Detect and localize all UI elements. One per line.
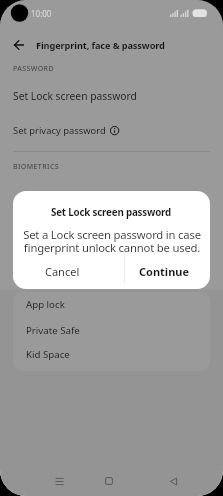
button[interactable] (7, 33, 31, 57)
staticText: Set Lock screen password (13, 89, 137, 103)
staticText: Private Safe (26, 324, 80, 337)
button[interactable]: Set Lock screen password (0, 85, 223, 107)
staticText: Set a Lock screen password in case finge… (23, 227, 201, 255)
button[interactable]: App lock (0, 294, 223, 315)
button[interactable]: Set privacy password (0, 119, 223, 141)
staticText: Cancel (45, 264, 80, 279)
button[interactable]: Kid Space (0, 344, 223, 365)
button[interactable] (98, 470, 120, 492)
button[interactable]: Cancel (13, 254, 112, 289)
staticText: Kid Space (26, 348, 70, 361)
staticText: Set privacy password (13, 124, 106, 137)
button[interactable] (162, 470, 184, 492)
button[interactable]: Continue (131, 254, 197, 289)
staticText: BIOMETRICS (13, 162, 59, 172)
staticText: Fingerprint, face & password (36, 39, 165, 52)
staticText: PASSWORD (13, 64, 54, 74)
staticText: App lock (26, 298, 65, 311)
staticText: Continue (139, 264, 190, 279)
staticText: Set Lock screen password (51, 206, 172, 219)
button[interactable]: Private Safe (0, 320, 223, 341)
button[interactable] (48, 470, 70, 492)
staticText: 10:00 (31, 8, 52, 19)
